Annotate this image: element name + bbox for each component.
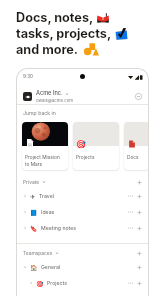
button[interactable]: Add page: [135, 263, 143, 271]
button[interactable]: 🎯: [16, 275, 149, 291]
staticText: 📘: [30, 209, 38, 216]
staticText: Meeting notes: [41, 225, 76, 231]
staticText: 🏠: [30, 264, 38, 271]
staticText: General: [41, 264, 61, 270]
button[interactable]: Projects: [73, 122, 119, 170]
button[interactable]: More options: [126, 279, 134, 287]
staticText: Projects: [47, 280, 67, 286]
staticText: Project Mission to Mars: [25, 154, 60, 167]
button[interactable]: 🏠: [16, 259, 149, 275]
button[interactable]: ✈️: [16, 188, 149, 204]
staticText: 🔖: [30, 225, 38, 232]
button[interactable]: 📘: [16, 204, 149, 220]
button[interactable]: Docs: [124, 122, 149, 170]
staticText: Private: [23, 179, 40, 185]
button[interactable]: Add page: [135, 224, 143, 232]
staticText: Projects: [76, 154, 95, 160]
button[interactable]: Add: [135, 178, 143, 186]
staticText: and more.: [16, 42, 79, 57]
button[interactable]: Acme Inc.: [16, 88, 149, 104]
staticText: Teamspaces: [23, 250, 53, 256]
staticText: tasks, projects,: [16, 26, 112, 41]
button[interactable]: Add page: [135, 279, 143, 287]
button[interactable]: Teamspaces: [16, 246, 149, 259]
staticText: 9:30: [23, 74, 33, 80]
staticText: owais@acme.com: [36, 98, 74, 103]
staticText: Jump back in: [23, 110, 56, 116]
button[interactable]: Add page: [135, 192, 143, 200]
button[interactable]: Project Mission to Mars: [22, 122, 68, 170]
button[interactable]: Add page: [135, 208, 143, 216]
staticText: Docs, notes,: [16, 10, 94, 25]
button[interactable]: More options: [126, 224, 134, 232]
staticText: Docs: [127, 154, 139, 160]
button[interactable]: Account settings: [133, 91, 143, 101]
staticText: Travel: [39, 193, 54, 199]
staticText: 🎯: [36, 280, 44, 287]
staticText: 🎯: [76, 140, 86, 149]
staticText: ✈️: [30, 193, 36, 200]
button[interactable]: More options: [126, 208, 134, 216]
staticText: Acme Inc.: [36, 90, 63, 97]
button[interactable]: 🔖: [16, 220, 149, 236]
button[interactable]: More options: [126, 192, 134, 200]
button[interactable]: Add: [135, 249, 143, 257]
staticText: Ideas: [41, 209, 55, 215]
button[interactable]: Private: [16, 175, 149, 188]
